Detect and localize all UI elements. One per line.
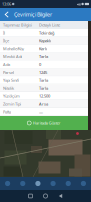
staticText: Tarla — [39, 85, 48, 91]
button[interactable]: Back — [53, 190, 68, 202]
staticText: Nitelik — [3, 85, 14, 91]
staticText: İlçe — [3, 38, 9, 43]
staticText: Çevrimiçi Bilgiler — [14, 11, 52, 18]
staticText: — — [39, 109, 43, 114]
staticText: 12.500 — [39, 93, 50, 99]
staticText: Karlı — [39, 46, 47, 51]
staticText: Yapı Sınıfı — [3, 78, 19, 83]
staticText: Pafta — [3, 109, 11, 114]
staticText: Arsa — [39, 101, 48, 107]
button[interactable]: Tool — [30, 181, 45, 186]
staticText: Parsel — [3, 70, 14, 75]
button[interactable]: Tool — [76, 181, 91, 186]
staticText: Mevkii Adı — [3, 54, 22, 59]
staticText: 1245 — [39, 70, 47, 75]
button[interactable]: Back — [0, 8, 14, 21]
staticText: Taşınmaz Bilgisi — [3, 22, 32, 28]
staticText: Haritada Göster — [33, 120, 61, 126]
staticText: Kapaklı — [39, 38, 51, 43]
staticText: Yüzölçüm — [3, 93, 20, 99]
button[interactable]: Tool — [0, 181, 15, 186]
staticText: Tekirdağ — [39, 30, 54, 35]
staticText: Zemin Tipi — [3, 101, 21, 107]
staticText: 0 — [39, 62, 41, 67]
staticText: Tarla — [39, 54, 48, 59]
button[interactable]: Tool — [45, 181, 61, 186]
staticText: 13:06 — [2, 1, 11, 7]
button[interactable]: Recents — [23, 190, 38, 202]
button[interactable]: Home — [38, 190, 53, 202]
button[interactable]: Tool — [61, 181, 76, 186]
button[interactable]: Haritada Göster — [0, 116, 88, 130]
staticText: Ada — [3, 62, 10, 67]
staticText: Detaylı Liste — [39, 22, 60, 28]
staticText: Mahalle/Köy — [3, 46, 24, 51]
staticText: İl — [3, 30, 5, 35]
button[interactable]: Tool — [15, 181, 30, 186]
staticText: Tarla — [39, 78, 48, 83]
